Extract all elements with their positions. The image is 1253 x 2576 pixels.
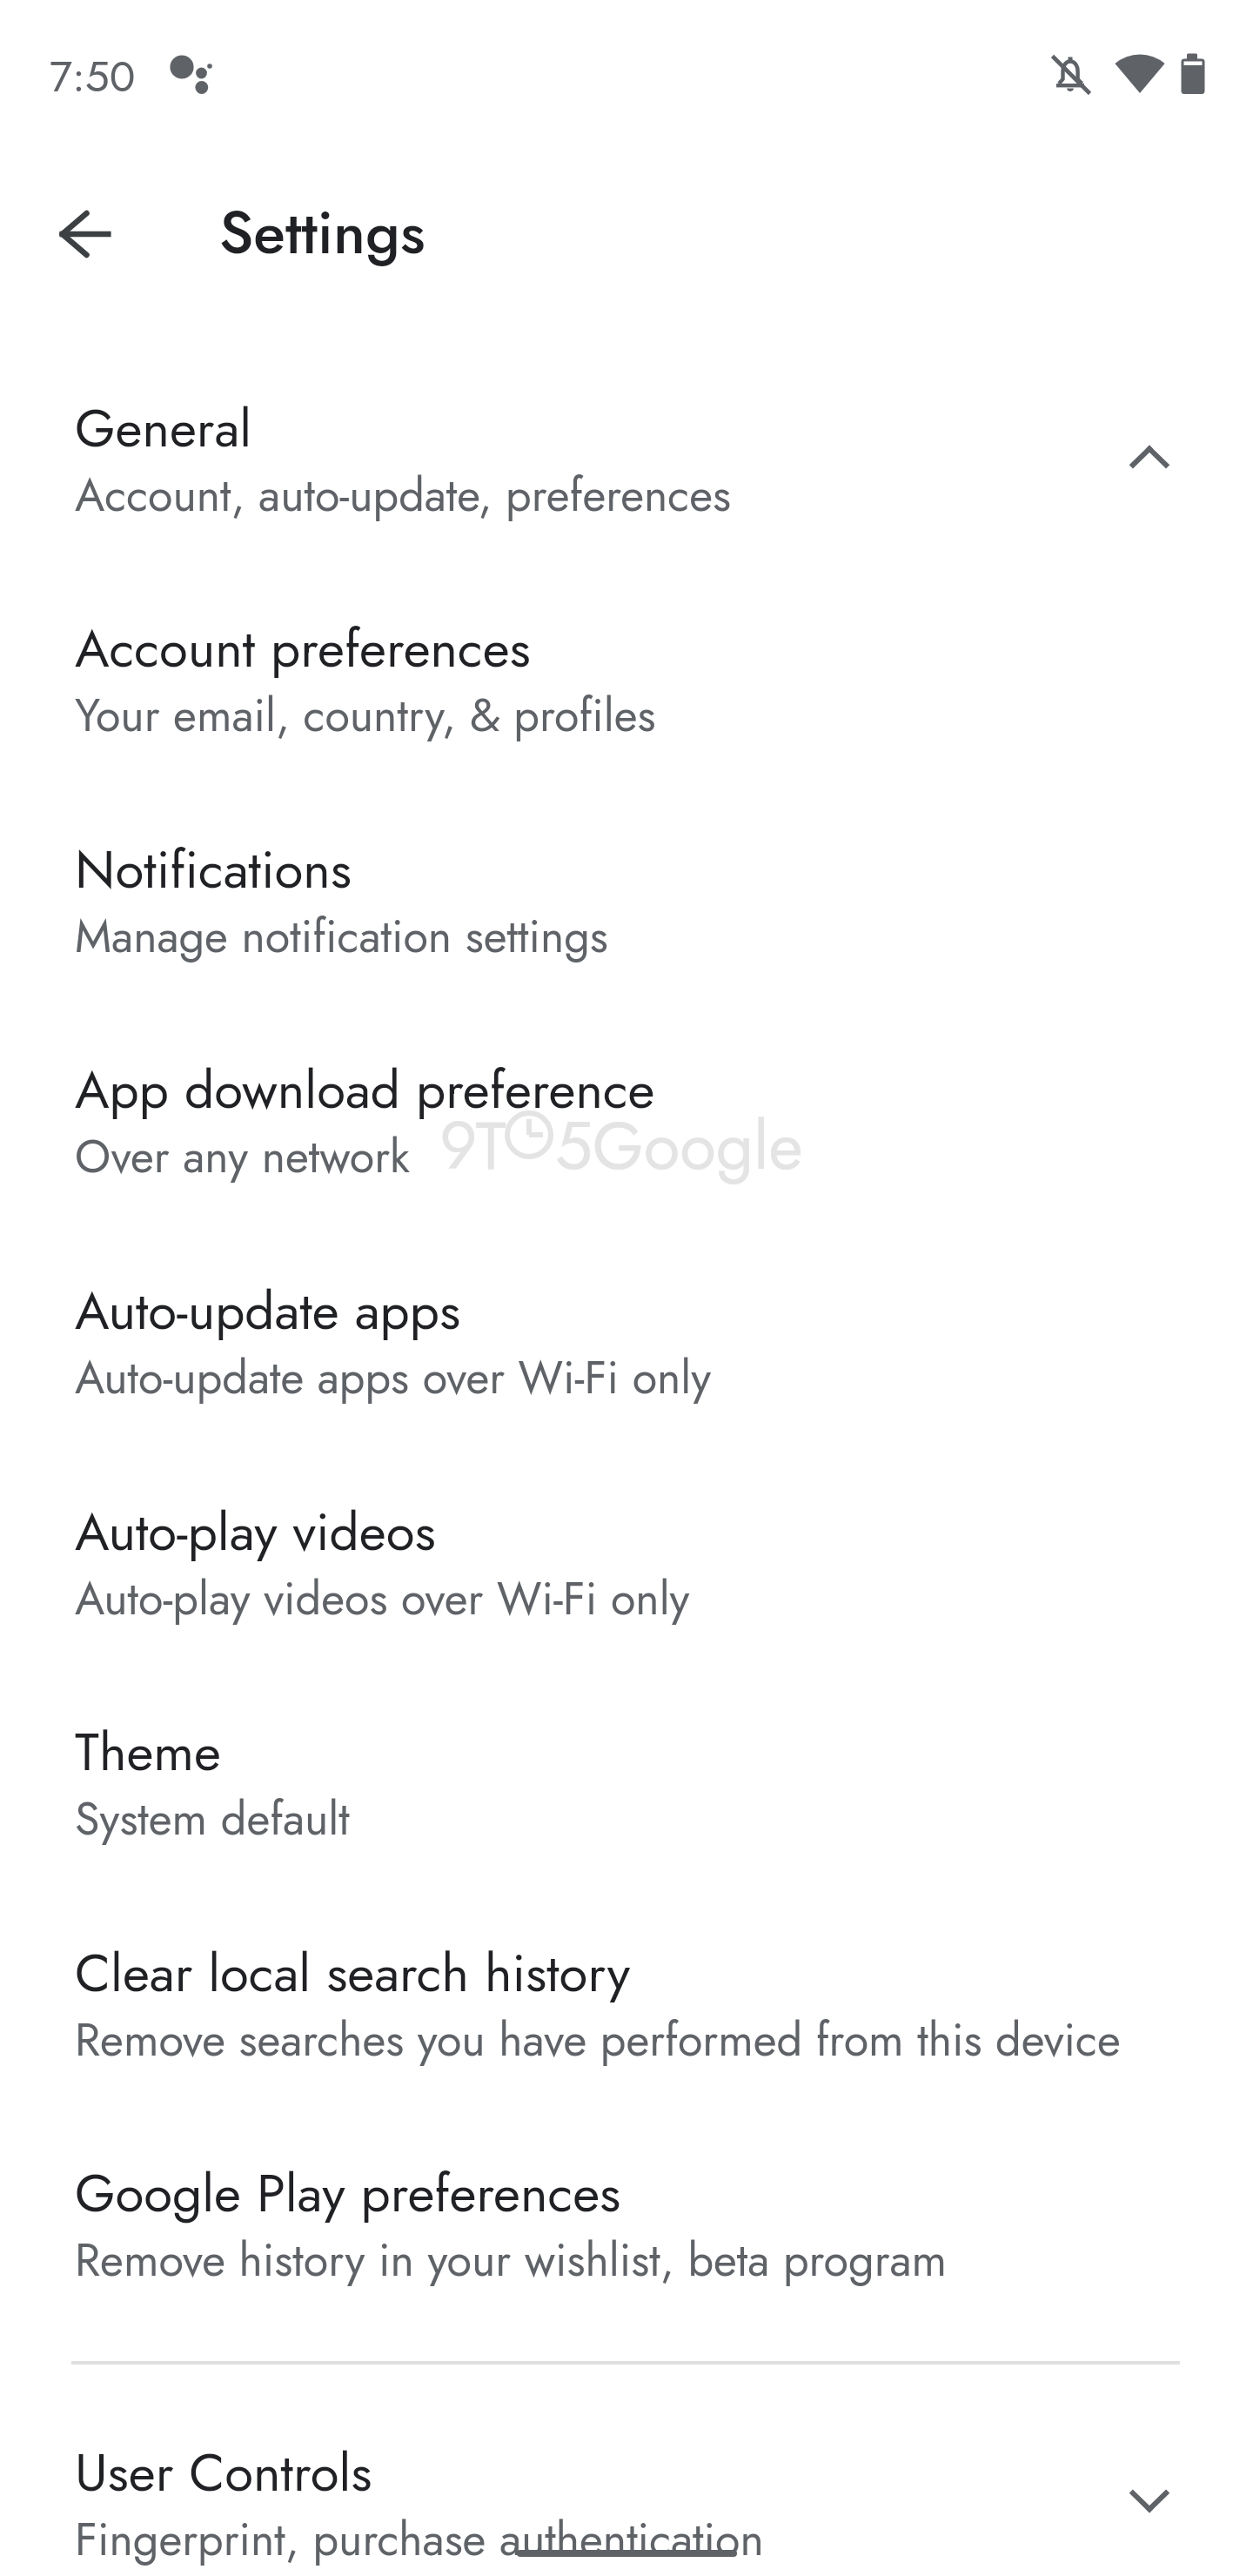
button[interactable]: User Controls bbox=[0, 2379, 1253, 2576]
staticText: Auto-play videos bbox=[75, 1494, 436, 1570]
button[interactable]: App download preference bbox=[0, 996, 1253, 1218]
staticText: Auto-update apps over Wi-Fi only bbox=[75, 1345, 712, 1410]
staticText: Auto-update apps bbox=[75, 1273, 461, 1349]
staticText: Over any network bbox=[75, 1124, 410, 1189]
button[interactable]: Navigate up bbox=[24, 173, 146, 295]
staticText: 7:50 bbox=[50, 45, 136, 108]
staticText: User Controls bbox=[75, 2435, 372, 2511]
staticText: General bbox=[75, 391, 252, 466]
button[interactable]: Google Play preferences bbox=[0, 2100, 1253, 2321]
button[interactable]: General bbox=[0, 335, 1253, 556]
button[interactable]: Auto-update apps bbox=[0, 1218, 1253, 1439]
button[interactable]: Theme bbox=[0, 1659, 1253, 1880]
staticText: Theme bbox=[75, 1714, 221, 1790]
staticText: Google Play preferences bbox=[75, 2156, 621, 2231]
staticText: 9T bbox=[439, 1098, 506, 1194]
staticText: Manage notification settings bbox=[75, 903, 608, 969]
staticText: Account, auto-update, preferences bbox=[75, 462, 731, 527]
staticText: Settings bbox=[219, 190, 425, 275]
staticText: Notifications bbox=[75, 832, 352, 908]
staticText: Remove searches you have performed from … bbox=[75, 2007, 1121, 2072]
button[interactable]: Auto-play videos bbox=[0, 1439, 1253, 1660]
staticText: Your email, country, & profiles bbox=[75, 682, 656, 748]
staticText: Fingerprint, purchase authentication bbox=[75, 2506, 764, 2572]
button[interactable]: Collapse section bbox=[1089, 396, 1210, 518]
staticText: System default bbox=[75, 1786, 350, 1851]
staticText: Auto-play videos over Wi-Fi only bbox=[75, 1566, 690, 1631]
staticText: Account preferences bbox=[75, 611, 531, 687]
button[interactable]: Notifications bbox=[0, 776, 1253, 997]
staticText: Clear local search history bbox=[75, 1935, 631, 2011]
staticText: Remove history in your wishlist, beta pr… bbox=[75, 2227, 948, 2292]
button[interactable]: Expand section bbox=[1089, 2440, 1210, 2562]
staticText: 5Google bbox=[555, 1098, 803, 1194]
button[interactable]: Clear local search history bbox=[0, 1880, 1253, 2101]
staticText: App download preference bbox=[75, 1052, 655, 1128]
button[interactable]: Account preferences bbox=[0, 555, 1253, 776]
